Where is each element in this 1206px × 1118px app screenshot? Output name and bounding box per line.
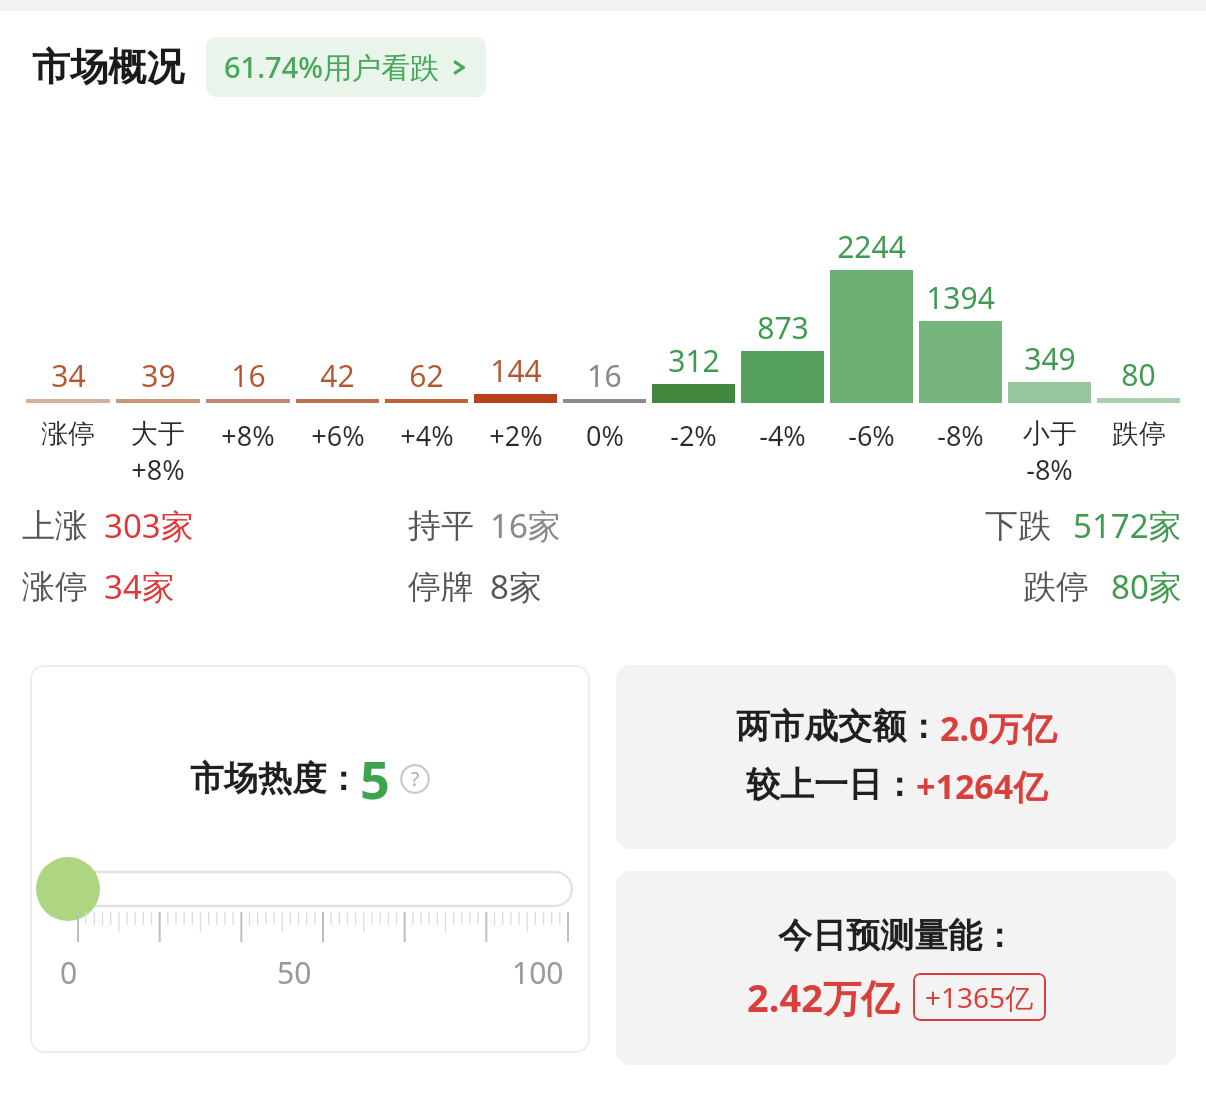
staticText: -4%: [759, 417, 806, 454]
button[interactable]: 349: [1008, 97, 1091, 488]
staticText: 上涨: [22, 505, 88, 547]
button[interactable]: 144: [474, 97, 557, 454]
button[interactable]: 跌停: [795, 564, 1182, 609]
staticText: 34: [51, 355, 86, 396]
staticText: 市场概况: [32, 43, 184, 91]
staticText: 100: [512, 952, 564, 993]
button[interactable]: 两市成交额：: [616, 665, 1176, 849]
staticText: +8%: [221, 417, 275, 454]
staticText: ?: [411, 766, 420, 792]
staticText: 停牌: [408, 566, 474, 608]
staticText: 小于: [1023, 417, 1077, 451]
button[interactable]: 上涨: [22, 503, 408, 548]
button[interactable]: 16: [563, 97, 646, 454]
button[interactable]: 下跌: [795, 503, 1182, 548]
staticText: 349: [1024, 338, 1076, 379]
staticText: 两市成交额：: [736, 705, 940, 748]
staticText: 5172家: [1073, 503, 1182, 548]
button[interactable]: 62: [385, 97, 468, 454]
staticText: 303家: [104, 503, 194, 548]
staticText: 持平: [408, 505, 474, 547]
staticText: 42: [320, 355, 355, 396]
staticText: 144: [490, 350, 542, 391]
staticText: 今日预测量能：: [778, 914, 1016, 957]
staticText: 312: [668, 340, 720, 381]
button[interactable]: 1394: [919, 97, 1002, 454]
staticText: 39: [141, 355, 176, 396]
staticText: 2.42万亿: [747, 971, 899, 1023]
staticText: +1365亿: [925, 978, 1034, 1016]
staticText: 0%: [586, 417, 624, 454]
staticText: +4%: [400, 417, 454, 454]
staticText: -8%: [937, 417, 984, 454]
button[interactable]: 市场热度：: [30, 665, 590, 1053]
staticText: 16: [587, 355, 622, 396]
button[interactable]: 312: [652, 97, 735, 454]
button[interactable]: 今日预测量能：: [616, 871, 1176, 1065]
staticText: 涨停: [41, 417, 95, 451]
staticText: 61.74%用户看跌: [224, 47, 439, 87]
button[interactable]: 61.74%用户看跌: [206, 37, 486, 97]
staticText: 16: [231, 355, 266, 396]
staticText: 跌停: [1112, 417, 1166, 451]
staticText: 5: [360, 743, 390, 814]
staticText: +2%: [489, 417, 543, 454]
button[interactable]: 34: [26, 97, 110, 451]
staticText: 8家: [490, 564, 542, 609]
staticText: 16家: [490, 503, 561, 548]
button[interactable]: 42: [296, 97, 379, 454]
staticText: 80: [1121, 354, 1156, 395]
staticText: 2244: [837, 226, 906, 267]
staticText: 1394: [926, 277, 995, 318]
staticText: 2.0万亿: [940, 705, 1057, 751]
staticText: -8%: [1026, 451, 1073, 488]
button[interactable]: 16: [206, 97, 290, 454]
staticText: 大于: [131, 417, 185, 451]
staticText: 0: [60, 952, 78, 993]
button[interactable]: 80: [1097, 97, 1180, 451]
staticText: 市场热度：: [190, 757, 360, 800]
staticText: 873: [757, 307, 809, 348]
staticText: +1264亿: [916, 763, 1048, 809]
staticText: 跌停: [1023, 566, 1089, 608]
staticText: 80家: [1111, 564, 1182, 609]
button[interactable]: 39: [116, 97, 200, 488]
button[interactable]: 帮助: [400, 764, 430, 794]
staticText: -6%: [848, 417, 895, 454]
staticText: 50: [277, 952, 312, 993]
button[interactable]: 持平: [408, 503, 795, 548]
staticText: +8%: [131, 451, 185, 488]
staticText: 较上一日：: [746, 763, 916, 806]
button[interactable]: 停牌: [408, 564, 795, 609]
staticText: 62: [409, 355, 444, 396]
button[interactable]: 涨停: [22, 564, 408, 609]
staticText: +6%: [311, 417, 365, 454]
staticText: 34家: [104, 564, 175, 609]
button[interactable]: 873: [741, 97, 824, 454]
staticText: 下跌: [985, 505, 1051, 547]
button[interactable]: 2244: [830, 97, 913, 454]
staticText: -2%: [670, 417, 717, 454]
staticText: 涨停: [22, 566, 88, 608]
